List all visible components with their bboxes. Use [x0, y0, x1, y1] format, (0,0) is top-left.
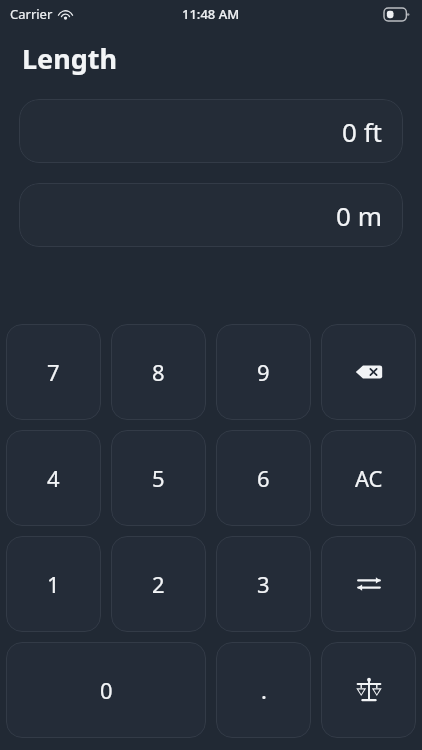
staticText: 8: [152, 357, 165, 387]
staticText: 5: [152, 463, 165, 493]
staticText: 0: [100, 675, 113, 705]
button[interactable]: 0: [6, 642, 206, 738]
staticText: 11:48 AM: [182, 5, 240, 23]
button[interactable]: AC: [321, 430, 416, 526]
button[interactable]: 8: [111, 324, 206, 420]
button[interactable]: Swap units: [321, 536, 416, 632]
button[interactable]: 5: [111, 430, 206, 526]
button[interactable]: 4: [6, 430, 101, 526]
button[interactable]: 3: [216, 536, 311, 632]
button[interactable]: Backspace: [321, 324, 416, 420]
button[interactable]: 6: [216, 430, 311, 526]
staticText: .: [261, 675, 267, 705]
staticText: AC: [355, 463, 383, 493]
button[interactable]: 7: [6, 324, 101, 420]
staticText: 3: [257, 569, 270, 599]
staticText: 2: [152, 569, 165, 599]
button[interactable]: 9: [216, 324, 311, 420]
button[interactable]: 0 ft: [19, 99, 403, 163]
staticText: 9: [257, 357, 270, 387]
button[interactable]: 0 m: [19, 183, 403, 247]
staticText: Length: [22, 40, 118, 77]
button[interactable]: 1: [6, 536, 101, 632]
button[interactable]: Convert: [321, 642, 416, 738]
staticText: 7: [47, 357, 60, 387]
staticText: 1: [47, 569, 60, 599]
staticText: 0 m: [336, 198, 382, 233]
staticText: 4: [47, 463, 60, 493]
staticText: 0 ft: [342, 114, 382, 149]
button[interactable]: 2: [111, 536, 206, 632]
staticText: 6: [257, 463, 270, 493]
button[interactable]: .: [216, 642, 311, 738]
staticText: Carrier: [10, 5, 53, 23]
